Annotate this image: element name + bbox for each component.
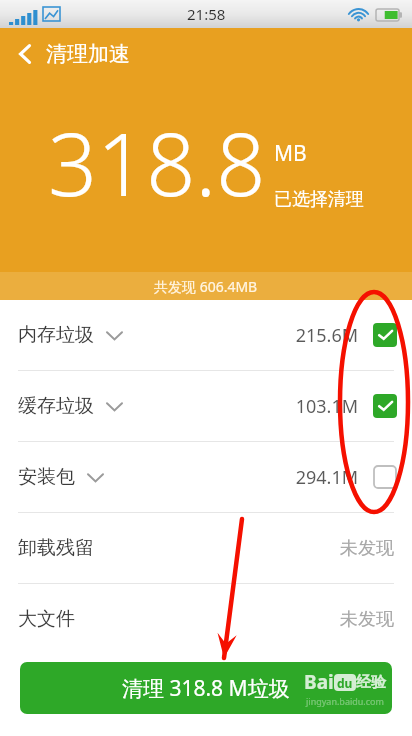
staticText: 未发现: [340, 537, 394, 560]
button[interactable]: 安装包: [0, 442, 412, 512]
staticText: 经验: [356, 673, 386, 692]
staticText: 清理加速: [46, 41, 130, 67]
staticText: du: [337, 675, 353, 691]
button[interactable]: 缓存垃圾: [0, 371, 412, 441]
button[interactable]: 清理 318.8 M垃圾: [20, 662, 392, 714]
button[interactable]: Selected, 内存垃圾: [372, 322, 398, 348]
staticText: 294.1M: [295, 465, 358, 490]
button[interactable]: 内存垃圾: [0, 300, 412, 370]
staticText: 215.6M: [295, 323, 358, 348]
staticText: 内存垃圾: [18, 323, 94, 347]
staticText: 未发现: [340, 608, 394, 631]
staticText: MB: [274, 139, 307, 168]
button[interactable]: Back: [0, 28, 144, 80]
staticText: 已选择清理: [274, 188, 364, 211]
staticText: 103.1M: [295, 394, 358, 419]
staticText: 大文件: [18, 607, 75, 631]
staticText: 清理 318.8 M垃圾: [122, 674, 290, 703]
button[interactable]: Not selected, 安装包: [372, 464, 398, 490]
staticText: 安装包: [18, 465, 75, 489]
staticText: Bai: [304, 669, 334, 695]
staticText: 318.8: [48, 104, 266, 221]
button[interactable]: Selected, 缓存垃圾: [372, 393, 398, 419]
staticText: 21:58: [187, 4, 226, 24]
staticText: jingyan.baidu.com: [306, 695, 384, 707]
staticText: 共发现 606.4MB: [154, 277, 258, 296]
staticText: 卸载残留: [18, 536, 94, 560]
staticText: 缓存垃圾: [18, 394, 94, 418]
button[interactable]: 大文件: [0, 584, 412, 654]
button[interactable]: 卸载残留: [0, 513, 412, 583]
